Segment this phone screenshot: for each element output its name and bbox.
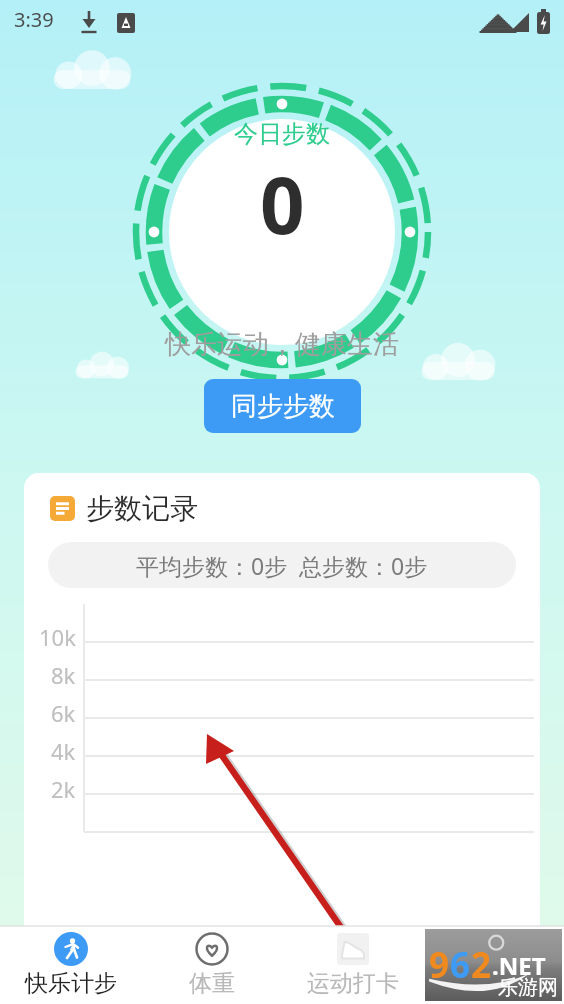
staticText: 4k: [51, 736, 76, 766]
staticText: 6: [450, 941, 471, 989]
button[interactable]: 运动打卡: [282, 926, 423, 1004]
staticText: 6k: [51, 698, 76, 728]
staticText: 快乐计步: [25, 969, 117, 998]
staticText: 体重: [189, 969, 235, 998]
button[interactable]: 快乐计步: [0, 926, 141, 1004]
staticText: 同步步数: [231, 390, 335, 423]
staticText: 2k: [51, 774, 76, 804]
staticText: 运动打卡: [307, 969, 399, 998]
staticText: 乐游网: [498, 975, 558, 1000]
staticText: 今日步数: [234, 119, 330, 149]
button[interactable]: 体重: [141, 926, 282, 1004]
staticText: 3:39: [14, 6, 54, 33]
staticText: 快乐运动，健康生活: [0, 328, 564, 361]
staticText: 10k: [39, 622, 76, 652]
staticText: 8k: [51, 660, 76, 690]
staticText: 0: [260, 151, 305, 257]
staticText: .NET: [492, 949, 546, 982]
button[interactable]: 同步步数: [204, 379, 361, 433]
staticText: 平均步数：0步 总步数：0步: [136, 550, 428, 581]
staticText: 9: [429, 941, 450, 989]
staticText: 今天 01/1901/1801/1701/1601/1501/14: [90, 974, 491, 1004]
staticText: 步数记录: [86, 491, 198, 526]
staticText: 2: [471, 941, 492, 989]
